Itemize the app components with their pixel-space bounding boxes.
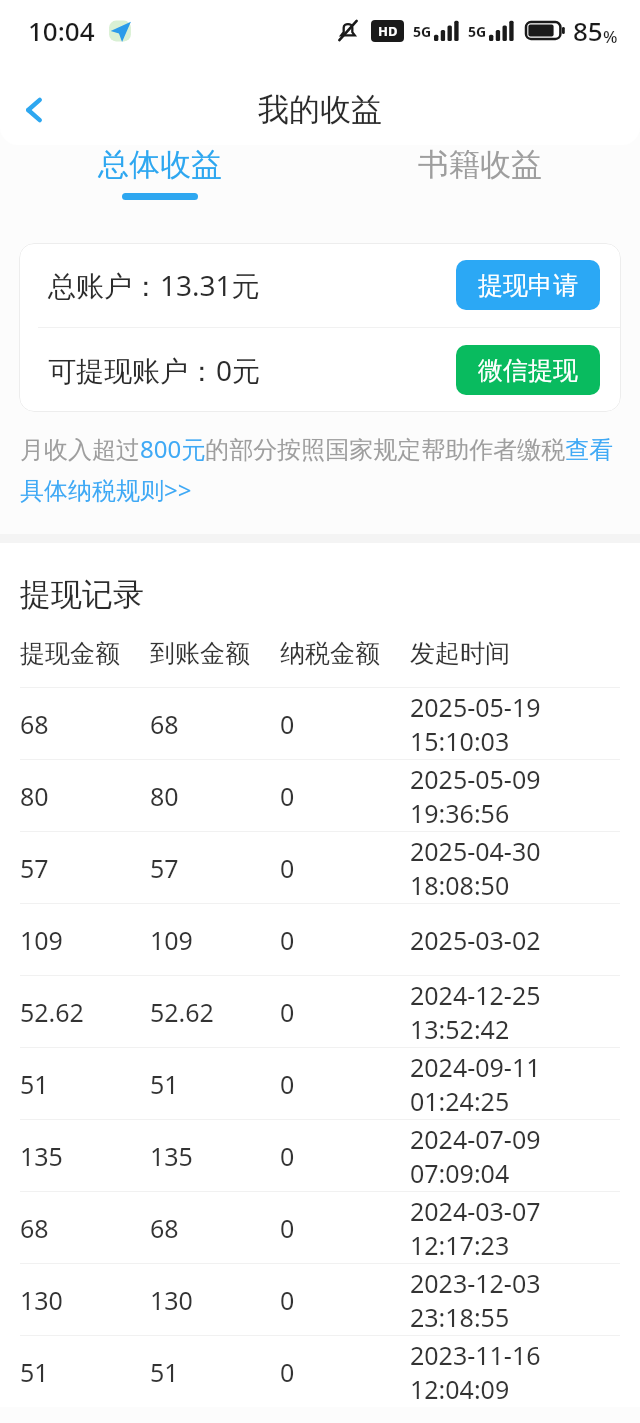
staticText: 51 bbox=[150, 1067, 179, 1101]
staticText: 0 bbox=[280, 995, 295, 1029]
staticText: 2025-05-09 19:36:56 bbox=[410, 762, 640, 830]
button[interactable]: 109 bbox=[0, 904, 640, 975]
staticText: 我的收益 bbox=[258, 90, 382, 129]
staticText: 发起时间 bbox=[410, 638, 510, 669]
button[interactable]: 总体收益 bbox=[0, 145, 320, 200]
button[interactable]: 书籍收益 bbox=[320, 145, 640, 200]
staticText: 2024-07-09 07:09:04 bbox=[410, 1122, 640, 1190]
staticText: 书籍收益 bbox=[418, 145, 542, 184]
staticText: 0 bbox=[280, 1283, 295, 1317]
staticText: 微信提现 bbox=[478, 355, 578, 386]
staticText: 纳税金额 bbox=[280, 638, 380, 669]
button[interactable]: 80 bbox=[0, 760, 640, 831]
staticText: 109 bbox=[20, 923, 63, 957]
staticText: 0 bbox=[280, 923, 295, 957]
staticText: 80 bbox=[20, 779, 49, 813]
staticText: 57 bbox=[150, 851, 179, 885]
staticText: HD bbox=[378, 22, 398, 40]
staticText: 总账户：13.31元 bbox=[48, 266, 260, 304]
staticText: 0 bbox=[280, 1355, 295, 1389]
button[interactable]: 68 bbox=[0, 688, 640, 759]
staticText: 2025-03-02 bbox=[410, 923, 541, 957]
staticText: 2025-04-30 18:08:50 bbox=[410, 834, 640, 902]
staticText: 52.62 bbox=[150, 995, 214, 1029]
staticText: 51 bbox=[150, 1355, 179, 1389]
staticText: 68 bbox=[20, 1211, 49, 1245]
button[interactable]: 提现申请 bbox=[456, 260, 600, 310]
staticText: 2024-12-25 13:52:42 bbox=[410, 978, 640, 1046]
button[interactable]: 微信提现 bbox=[456, 345, 600, 395]
button[interactable]: 51 bbox=[0, 1336, 640, 1407]
button[interactable]: 52.62 bbox=[0, 976, 640, 1047]
staticText: 135 bbox=[20, 1139, 63, 1173]
staticText: 可提现账户：0元 bbox=[48, 351, 261, 389]
staticText: 2024-09-11 01:24:25 bbox=[410, 1050, 640, 1118]
staticText: 109 bbox=[150, 923, 193, 957]
staticText: 提现金额 bbox=[20, 638, 120, 669]
staticText: 130 bbox=[20, 1283, 63, 1317]
staticText: 总体收益 bbox=[98, 145, 222, 184]
button[interactable]: Back bbox=[6, 82, 62, 138]
staticText: 到账金额 bbox=[150, 638, 250, 669]
button[interactable]: 57 bbox=[0, 832, 640, 903]
staticText: 0 bbox=[280, 1139, 295, 1173]
staticText: 0 bbox=[280, 779, 295, 813]
staticText: 135 bbox=[150, 1139, 193, 1173]
button[interactable]: 130 bbox=[0, 1264, 640, 1335]
staticText: % bbox=[603, 25, 618, 48]
staticText: 68 bbox=[150, 707, 179, 741]
staticText: 57 bbox=[20, 851, 49, 885]
staticText: 0 bbox=[280, 1067, 295, 1101]
button[interactable]: 月收入超过800元的部分按照国家规定帮助作者缴税查看具体纳税规则>> bbox=[20, 432, 620, 506]
button[interactable]: 68 bbox=[0, 1192, 640, 1263]
staticText: 0 bbox=[280, 1211, 295, 1245]
staticText: 0 bbox=[280, 851, 295, 885]
staticText: 5G bbox=[413, 22, 432, 41]
staticText: 月收入超过800元的部分按照国家规定帮助作者缴税查看具体纳税规则>> bbox=[20, 432, 620, 506]
staticText: 5G bbox=[468, 22, 487, 41]
staticText: 68 bbox=[150, 1211, 179, 1245]
staticText: 2024-03-07 12:17:23 bbox=[410, 1194, 640, 1262]
staticText: 提现申请 bbox=[478, 270, 578, 301]
staticText: 52.62 bbox=[20, 995, 84, 1029]
staticText: 51 bbox=[20, 1067, 49, 1101]
staticText: 2023-12-03 23:18:55 bbox=[410, 1266, 640, 1334]
staticText: 85 bbox=[573, 13, 603, 48]
staticText: 10:04 bbox=[28, 13, 95, 48]
staticText: 130 bbox=[150, 1283, 193, 1317]
staticText: 80 bbox=[150, 779, 179, 813]
button[interactable]: 51 bbox=[0, 1048, 640, 1119]
staticText: 51 bbox=[20, 1355, 49, 1389]
staticText: 68 bbox=[20, 707, 49, 741]
staticText: 提现记录 bbox=[20, 575, 144, 614]
staticText: 2025-05-19 15:10:03 bbox=[410, 690, 640, 758]
staticText: 2023-11-16 12:04:09 bbox=[410, 1338, 640, 1406]
button[interactable]: 135 bbox=[0, 1120, 640, 1191]
staticText: 0 bbox=[280, 707, 295, 741]
